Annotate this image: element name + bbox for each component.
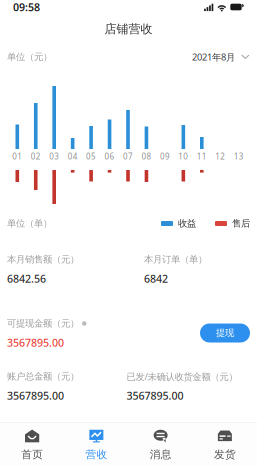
button[interactable]: 营收: [64, 422, 128, 466]
staticText: 本月销售额（元）: [7, 254, 79, 265]
button[interactable]: 消息: [128, 422, 193, 466]
staticText: 单位（元）: [7, 51, 52, 63]
staticText: 首页: [21, 448, 43, 461]
staticText: 03: [49, 151, 59, 162]
staticText: 04: [68, 151, 78, 162]
staticText: 3567895.00: [7, 388, 64, 403]
staticText: 07: [123, 151, 133, 162]
staticText: 店铺营收: [104, 22, 152, 36]
button[interactable]: 提现: [200, 323, 250, 342]
staticText: 09: [160, 151, 170, 162]
staticText: 收益: [178, 218, 196, 229]
staticText: 05: [86, 151, 96, 162]
staticText: 消息: [150, 448, 172, 461]
staticText: 11: [197, 151, 207, 162]
staticText: 本月订单（单）: [144, 254, 207, 265]
staticText: 提现: [216, 327, 234, 339]
staticText: 01: [12, 151, 22, 162]
staticText: 12: [215, 151, 225, 162]
staticText: 06: [104, 151, 114, 162]
button[interactable]: 2021年8月: [192, 46, 250, 68]
staticText: 10: [178, 151, 188, 162]
staticText: 13: [234, 151, 244, 162]
staticText: 售后: [232, 218, 250, 229]
staticText: 可提现金额（元）: [7, 318, 79, 329]
staticText: 账户总金额（元）: [7, 371, 79, 382]
staticText: 6842.56: [7, 271, 46, 286]
staticText: 08: [141, 151, 151, 162]
staticText: 6842: [144, 271, 168, 286]
staticText: 3567895.00: [7, 335, 64, 350]
staticText: 3567895.00: [126, 388, 183, 403]
staticText: 发货: [214, 448, 236, 461]
staticText: 02: [31, 151, 41, 162]
staticText: 营收: [85, 448, 107, 461]
button[interactable]: 首页: [0, 422, 64, 466]
staticText: 2021年8月: [192, 51, 235, 63]
button[interactable]: 发货: [193, 422, 257, 466]
staticText: 单位（单）: [7, 218, 52, 229]
staticText: 09:58: [13, 0, 40, 14]
staticText: 已发/未确认收货金额（元）: [126, 370, 237, 383]
